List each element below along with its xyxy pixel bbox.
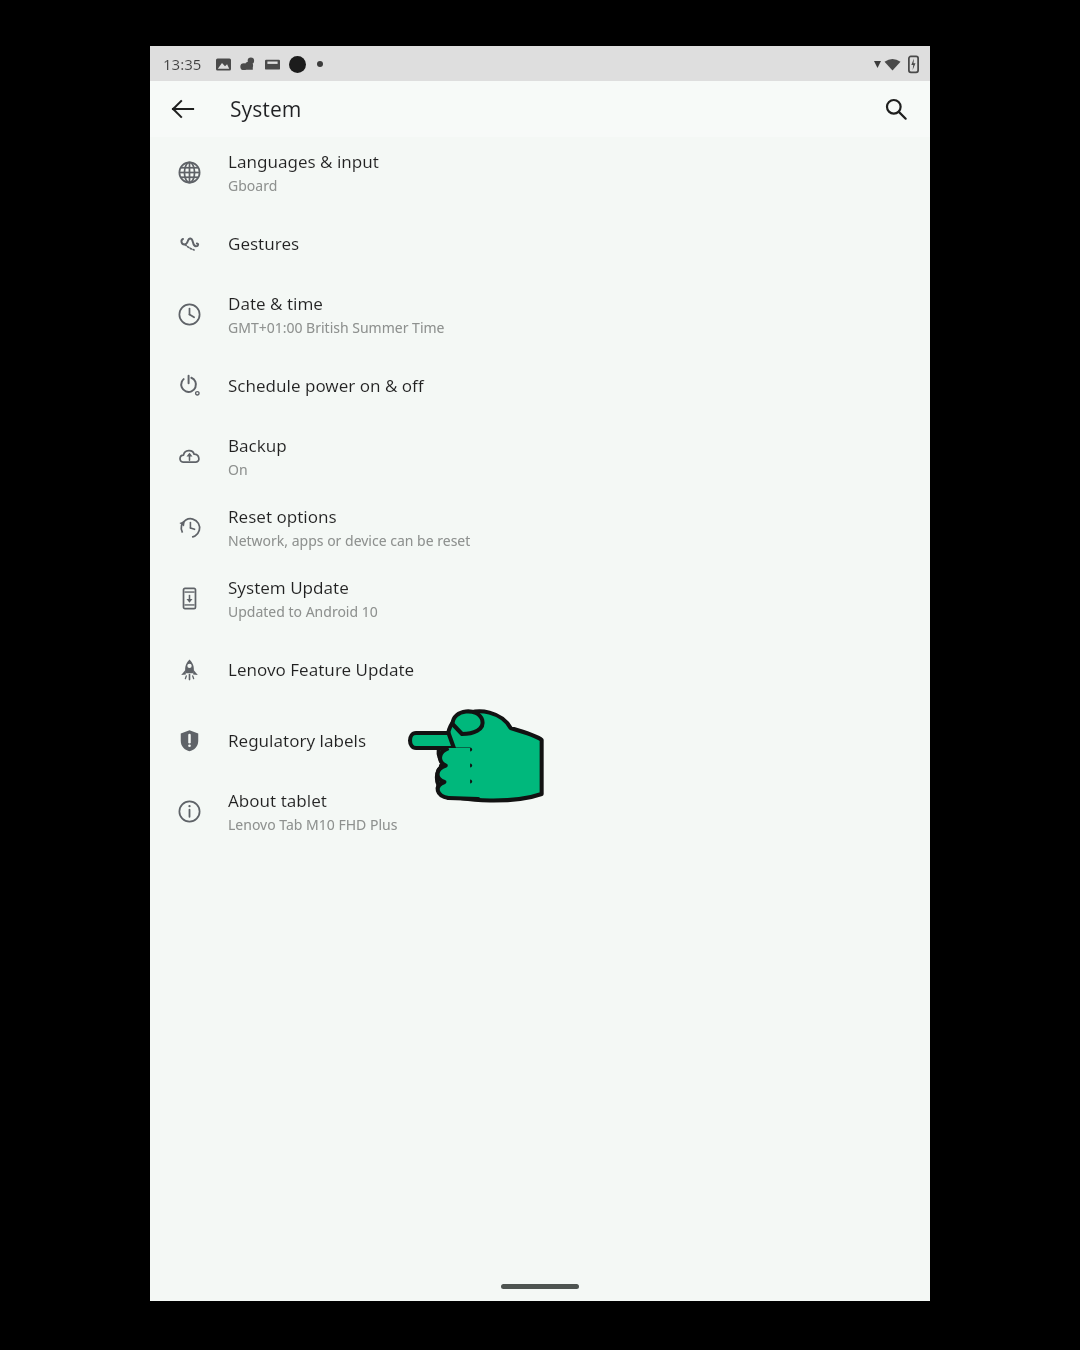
staticText: System xyxy=(230,95,302,124)
button[interactable]: Backup xyxy=(150,421,930,492)
button[interactable]: Back xyxy=(159,85,207,133)
button[interactable]: Search xyxy=(872,85,920,133)
button[interactable]: Date & time xyxy=(150,279,930,350)
staticText: 13:35 xyxy=(163,54,202,74)
staticText: Lenovo Feature Update xyxy=(228,658,415,681)
staticText: Network, apps or device can be reset xyxy=(228,531,471,550)
button[interactable]: Languages & input xyxy=(150,137,930,208)
staticText: Gboard xyxy=(228,176,278,195)
button[interactable]: About tablet xyxy=(150,776,930,847)
button[interactable]: Schedule power on & off xyxy=(150,350,930,421)
staticText: Backup xyxy=(228,434,287,457)
staticText: Schedule power on & off xyxy=(228,374,424,397)
staticText: GMT+01:00 British Summer Time xyxy=(228,318,445,337)
staticText: On xyxy=(228,460,248,479)
button[interactable]: System Update xyxy=(150,563,930,634)
staticText: Date & time xyxy=(228,292,323,315)
button[interactable]: Lenovo Feature Update xyxy=(150,634,930,705)
staticText: Updated to Android 10 xyxy=(228,602,378,621)
button[interactable]: Reset options xyxy=(150,492,930,563)
staticText: Regulatory labels xyxy=(228,729,367,752)
staticText: Lenovo Tab M10 FHD Plus xyxy=(228,815,398,834)
staticText: Reset options xyxy=(228,505,337,528)
button[interactable]: Regulatory labels xyxy=(150,705,930,776)
staticText: System Update xyxy=(228,576,349,599)
staticText: About tablet xyxy=(228,789,327,812)
button[interactable]: Gestures xyxy=(150,208,930,279)
staticText: Languages & input xyxy=(228,150,379,173)
staticText: Gestures xyxy=(228,232,300,255)
